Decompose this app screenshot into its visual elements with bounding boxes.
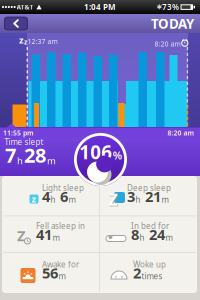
staticText: h [17, 154, 23, 167]
staticText: z [24, 38, 27, 46]
staticText: 56 [42, 263, 58, 282]
staticText: Time slept [4, 137, 43, 147]
staticText: 12:37 am [27, 37, 57, 46]
staticText: 3 [127, 186, 135, 206]
staticText: h [135, 194, 140, 205]
button[interactable]: Z [0, 216, 99, 252]
staticText: Awake for [42, 259, 79, 270]
staticText: Deep sleep [127, 183, 171, 193]
staticText: 8:20 am [167, 129, 193, 137]
staticText: m [161, 194, 168, 205]
button[interactable]: Awake for [0, 252, 99, 293]
staticText: 6 [56, 186, 68, 206]
staticText: 2 [133, 263, 141, 282]
staticText: 73% [162, 2, 179, 12]
staticText: TODAY [151, 15, 194, 32]
staticText: m [68, 194, 75, 205]
staticText: 8:20 am [154, 40, 180, 48]
staticText: 11:55 pm [3, 129, 33, 137]
button[interactable]: In bed for [100, 216, 199, 252]
staticText: Z [109, 189, 118, 211]
staticText: Z [17, 226, 25, 245]
button[interactable]: Woke up [100, 252, 199, 293]
staticText: 8 [131, 224, 139, 244]
button[interactable]: z [0, 176, 99, 216]
staticText: 1:04 PM [84, 2, 116, 12]
staticText: % [113, 148, 122, 162]
staticText: h [139, 232, 144, 243]
staticText: 7 [5, 142, 16, 168]
staticText: Woke up [133, 259, 166, 270]
button[interactable] [4, 17, 28, 30]
staticText: 4 [42, 186, 50, 206]
staticText: m [165, 232, 172, 243]
staticText: 24 [145, 224, 165, 244]
button[interactable]: Z [100, 176, 199, 216]
staticText: z [31, 193, 36, 205]
staticText: 28 [24, 142, 46, 168]
staticText: AT&T [16, 3, 33, 11]
staticText: In bed for [131, 221, 169, 231]
staticText: times [141, 271, 162, 281]
staticText: m [58, 271, 65, 281]
staticText: Light sleep [42, 183, 84, 193]
staticText: 106 [79, 140, 112, 164]
staticText: Z [108, 189, 117, 210]
staticText: m [52, 232, 59, 243]
staticText: 21 [141, 186, 161, 206]
staticText: h [50, 194, 55, 205]
staticText: z [19, 34, 24, 46]
staticText: 41 [36, 224, 52, 244]
staticText: ✱ [156, 3, 162, 11]
staticText: Fell asleep in [36, 221, 85, 231]
staticText: m [47, 154, 56, 167]
